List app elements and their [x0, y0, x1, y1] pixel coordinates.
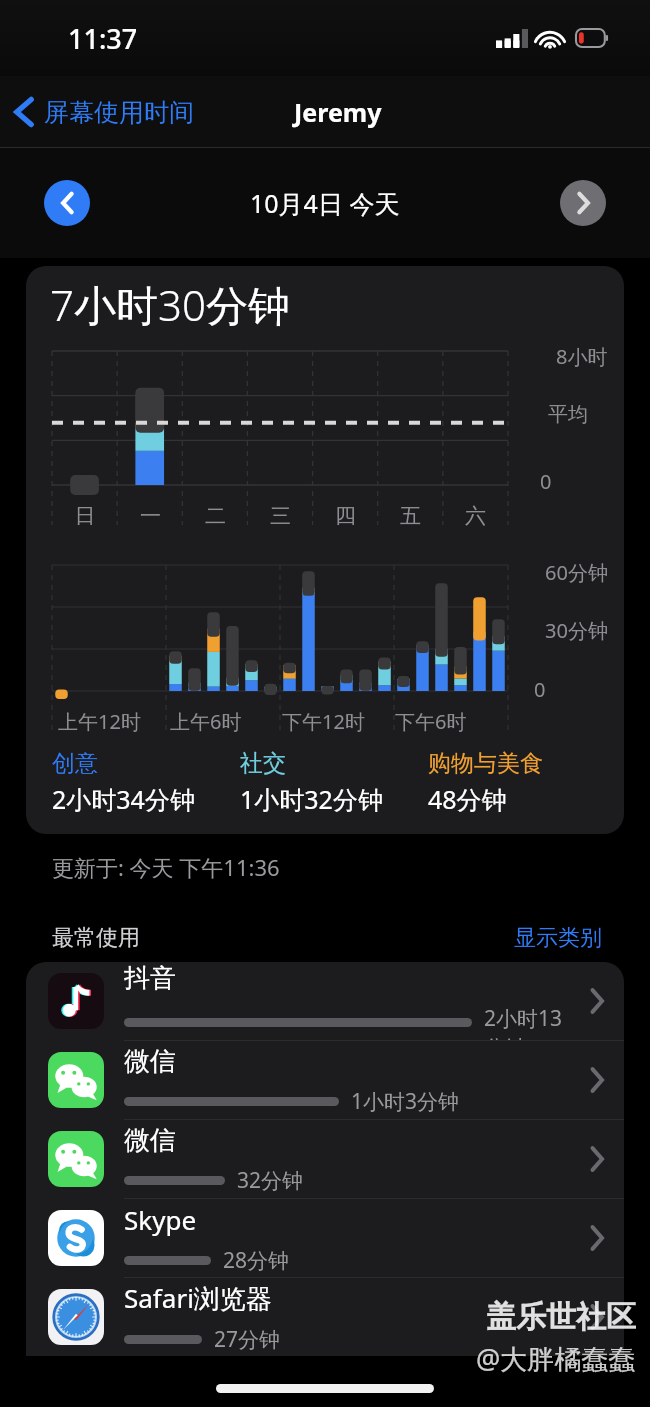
- staticText: 二: [183, 503, 248, 529]
- staticText: 1小时3分钟: [351, 1087, 460, 1116]
- staticText: 32分钟: [237, 1166, 304, 1195]
- staticText: Safari浏览器: [124, 1280, 272, 1316]
- staticText: 上午12时: [58, 708, 170, 735]
- staticText: Jeremy: [294, 95, 382, 129]
- staticText: 六: [443, 503, 508, 529]
- staticText: 微信: [124, 1045, 176, 1078]
- staticText: 8小时: [556, 343, 608, 370]
- staticText: 盖乐世社区: [486, 1298, 636, 1336]
- button[interactable]: 创意: [52, 749, 240, 816]
- button[interactable]: Previous day: [44, 180, 90, 226]
- staticText: @大胖橘蠢蠢: [476, 1340, 636, 1377]
- staticText: 10月4日 今天: [250, 186, 400, 220]
- staticText: 日: [52, 503, 118, 529]
- staticText: 7小时30分钟: [50, 276, 290, 333]
- button[interactable]: 抖音: [26, 962, 624, 1040]
- staticText: 0: [534, 676, 546, 703]
- staticText: Skype: [124, 1202, 197, 1237]
- staticText: 三: [248, 503, 313, 529]
- staticText: 显示类别: [514, 924, 602, 952]
- staticText: 2小时34分钟: [52, 782, 195, 816]
- staticText: 27分钟: [214, 1325, 281, 1354]
- staticText: 四: [313, 503, 378, 529]
- button[interactable]: Skype: [26, 1199, 624, 1277]
- staticText: 社交: [240, 749, 286, 778]
- staticText: 更新于: 今天 下午11:36: [52, 852, 280, 882]
- staticText: 上午6时: [170, 708, 282, 735]
- staticText: 30分钟: [545, 617, 608, 644]
- staticText: 下午6时: [395, 708, 508, 735]
- button[interactable]: 社交: [240, 749, 428, 816]
- staticText: 购物与美食: [428, 749, 543, 778]
- staticText: 下午12时: [282, 708, 395, 735]
- staticText: 创意: [52, 749, 98, 778]
- button[interactable]: 购物与美食: [428, 749, 606, 816]
- staticText: 五: [378, 503, 443, 529]
- staticText: 微信: [124, 1124, 176, 1157]
- button[interactable]: 微信: [26, 1041, 624, 1119]
- button[interactable]: 屏幕使用时间: [0, 89, 204, 135]
- staticText: 1小时32分钟: [240, 782, 383, 816]
- button[interactable]: 显示类别: [514, 924, 602, 952]
- staticText: 一: [118, 503, 183, 529]
- staticText: 0: [540, 468, 552, 495]
- staticText: 最常使用: [52, 924, 140, 952]
- staticText: 28分钟: [223, 1246, 290, 1275]
- staticText: 平均: [548, 402, 588, 427]
- staticText: 屏幕使用时间: [44, 97, 194, 128]
- staticText: 2小时13分钟: [484, 1004, 582, 1040]
- button[interactable]: 微信: [26, 1120, 624, 1198]
- button[interactable]: Safari浏览器: [26, 1278, 624, 1356]
- staticText: 11:37: [68, 20, 138, 57]
- staticText: 48分钟: [428, 782, 507, 816]
- staticText: 60分钟: [545, 559, 608, 586]
- button[interactable]: Next day: [560, 180, 606, 226]
- staticText: 抖音: [124, 962, 176, 995]
